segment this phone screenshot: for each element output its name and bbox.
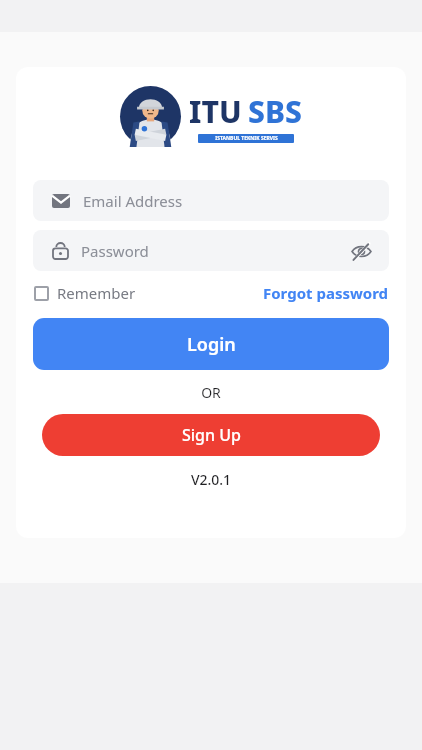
staticText: Sign Up [182, 424, 241, 446]
button[interactable]: Show password [347, 237, 375, 265]
staticText: V2.0.1 [16, 470, 406, 489]
staticText: ITU [189, 91, 242, 132]
staticText: Password [81, 241, 347, 261]
staticText: SBS [248, 91, 302, 132]
button[interactable]: Email Address [33, 180, 389, 221]
staticText: Login [187, 332, 236, 357]
staticText: Email Address [83, 191, 183, 211]
button[interactable]: Remember [34, 283, 136, 303]
button[interactable]: Login [33, 318, 389, 370]
button[interactable]: Forgot password [263, 283, 389, 303]
staticText: OR [16, 383, 406, 402]
staticText: Remember [57, 283, 136, 303]
button[interactable]: Sign Up [42, 414, 380, 456]
button[interactable]: Password [33, 230, 389, 271]
staticText: ISTANBUL TEKNIK SERVIS [215, 135, 278, 142]
staticText: Forgot password [263, 283, 389, 303]
